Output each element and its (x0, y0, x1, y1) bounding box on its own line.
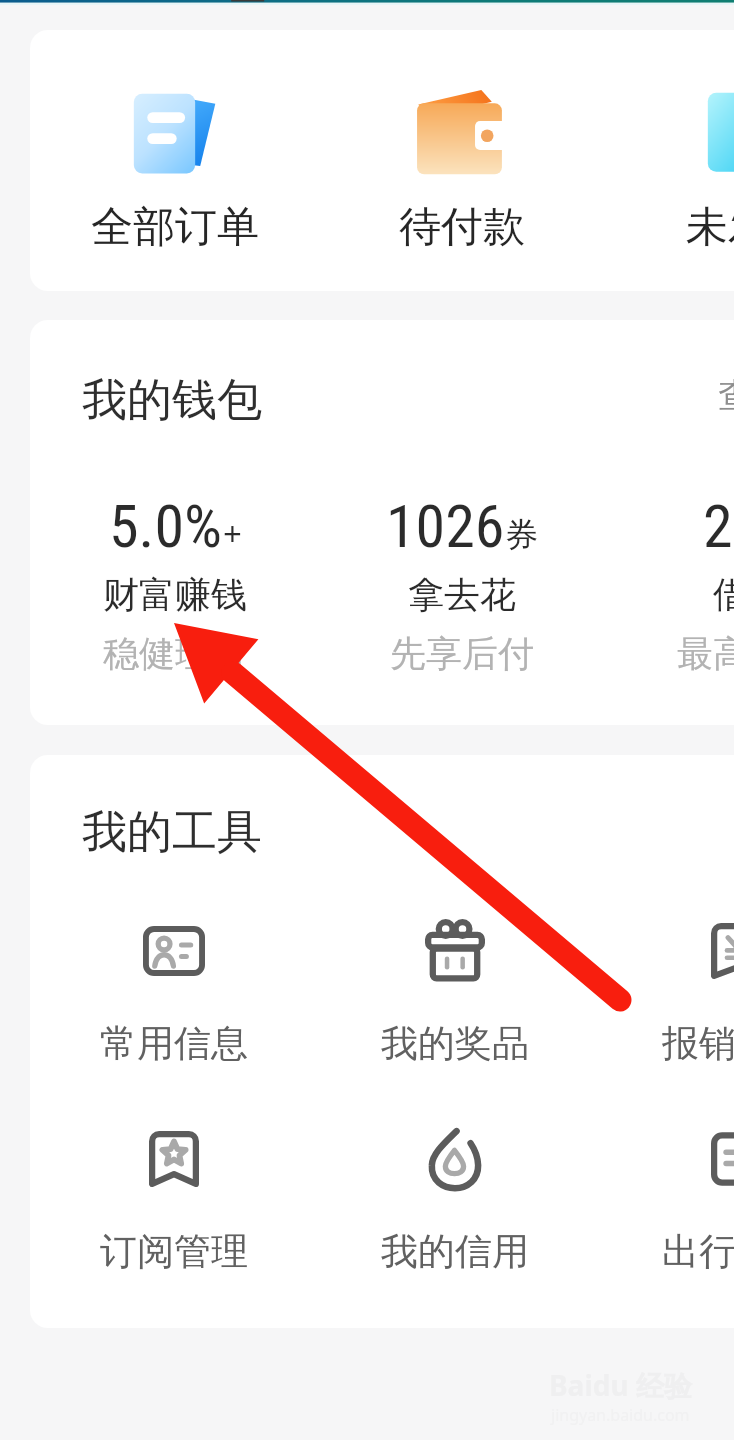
button[interactable]: 未发货 (619, 30, 734, 254)
staticText: 稳健理财 (103, 631, 247, 676)
staticText: 我的工具 (82, 804, 262, 861)
staticText: 借钱 (713, 572, 734, 617)
staticText: 5.0% (109, 491, 223, 561)
button[interactable]: 1026 (327, 491, 597, 676)
button[interactable]: 查看全部 (718, 374, 734, 417)
staticText: 券 (505, 514, 538, 556)
button[interactable]: 我的奖品 (335, 918, 575, 1067)
button[interactable]: 5.0% (40, 491, 310, 676)
staticText: 1026 (386, 491, 505, 561)
staticText: 财富赚钱 (103, 572, 247, 617)
staticText: + (223, 511, 242, 556)
button[interactable]: 待付款 (332, 30, 592, 254)
staticText: 未发货 (686, 201, 734, 254)
staticText: 订阅管理 (100, 1228, 248, 1275)
staticText: Baidu 经验 (549, 1366, 692, 1404)
staticText: 拿去花 (408, 572, 516, 617)
staticText: 我的奖品 (381, 1020, 529, 1067)
button[interactable]: 20 (614, 491, 734, 676)
staticText: 我的钱包 (82, 372, 262, 429)
staticText: 出行服务 (662, 1228, 734, 1275)
button[interactable]: 报销凭证 (616, 918, 734, 1067)
button[interactable]: 出行服务 (616, 1126, 734, 1275)
staticText: 报销凭证 (662, 1020, 734, 1067)
staticText: 最高可借 (677, 631, 734, 676)
button[interactable]: 全部订单 (45, 30, 305, 254)
staticText: 先享后付 (390, 631, 534, 676)
staticText: 待付款 (399, 201, 525, 254)
staticText: 查看全部 (718, 374, 734, 417)
staticText: 全部订单 (91, 201, 259, 254)
button[interactable]: 常用信息 (54, 918, 294, 1067)
staticText: 20 (703, 491, 734, 561)
button[interactable]: 我的信用 (335, 1126, 575, 1275)
staticText: 我的信用 (381, 1228, 529, 1275)
staticText: 常用信息 (100, 1020, 248, 1067)
button[interactable]: 订阅管理 (54, 1126, 294, 1275)
